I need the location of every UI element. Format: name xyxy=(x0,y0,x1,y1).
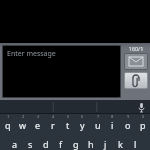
staticText: 0 xyxy=(142,114,145,119)
staticText: 1 xyxy=(7,114,10,119)
staticText: a xyxy=(12,138,18,150)
button[interactable]: 6 xyxy=(75,114,90,136)
staticText: j xyxy=(104,138,107,150)
staticText: u xyxy=(95,119,101,131)
staticText: Enter message xyxy=(7,49,56,59)
button[interactable]: 2 xyxy=(15,114,30,136)
button[interactable]: 8 xyxy=(105,114,120,136)
staticText: p xyxy=(140,119,146,131)
staticText: o xyxy=(125,119,131,131)
staticText: r xyxy=(51,119,55,131)
button[interactable]: g xyxy=(68,136,83,150)
button[interactable]: Send message xyxy=(125,54,147,69)
button[interactable]: h xyxy=(83,136,98,150)
staticText: 7 xyxy=(97,114,100,119)
staticText: q xyxy=(5,119,11,131)
button[interactable]: Enter message xyxy=(3,46,120,97)
staticText: y xyxy=(80,119,85,131)
button[interactable]: 5 xyxy=(60,114,75,136)
button[interactable]: f xyxy=(53,136,68,150)
staticText: 8 xyxy=(111,114,114,119)
staticText: 160/1 xyxy=(123,45,149,52)
staticText: k xyxy=(118,138,123,150)
staticText: l xyxy=(134,138,137,150)
button[interactable]: l xyxy=(128,136,143,150)
button[interactable]: s xyxy=(23,136,38,150)
button[interactable]: 0 xyxy=(135,114,150,136)
staticText: e xyxy=(35,119,41,131)
button[interactable]: d xyxy=(38,136,53,150)
staticText: 5 xyxy=(67,114,70,119)
button[interactable]: k xyxy=(113,136,128,150)
button[interactable]: 7 xyxy=(90,114,105,136)
staticText: 2 xyxy=(22,114,25,119)
staticText: f xyxy=(59,138,63,150)
staticText: d xyxy=(43,138,49,150)
button[interactable]: Attach xyxy=(125,73,147,88)
button[interactable]: j xyxy=(98,136,113,150)
staticText: w xyxy=(19,119,27,131)
staticText: i xyxy=(111,119,114,131)
staticText: 6 xyxy=(81,114,84,119)
staticText: h xyxy=(88,138,94,150)
staticText: 4 xyxy=(52,114,55,119)
button[interactable]: 3 xyxy=(30,114,45,136)
button[interactable]: 4 xyxy=(45,114,60,136)
button[interactable]: a xyxy=(7,136,23,150)
staticText: 9 xyxy=(127,114,130,119)
staticText: t xyxy=(66,119,70,131)
button[interactable]: Voice input xyxy=(136,102,146,112)
button[interactable]: 1 xyxy=(0,114,15,136)
staticText: 3 xyxy=(37,114,40,119)
button[interactable]: 9 xyxy=(120,114,135,136)
staticText: g xyxy=(73,138,79,150)
staticText: s xyxy=(28,138,33,150)
